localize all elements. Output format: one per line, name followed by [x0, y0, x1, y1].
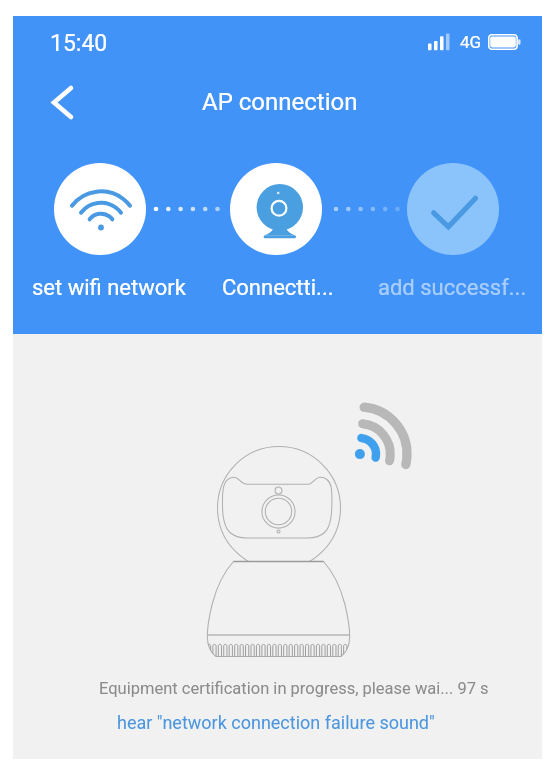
staticText: add successf... [378, 275, 527, 301]
staticText: hear "network connection failure sound" [117, 712, 435, 733]
staticText: set wifi network [32, 275, 186, 301]
staticText: 4G [460, 32, 482, 52]
staticText: Connectti... [222, 275, 334, 301]
button[interactable]: set wifi network [54, 163, 146, 255]
button[interactable]: hear "network connection failure sound" [106, 707, 446, 737]
button[interactable]: Back [38, 80, 82, 124]
staticText: AP connection [202, 88, 358, 116]
staticText: Equipment certification in progress, ple… [99, 679, 489, 698]
button[interactable]: Connecting [230, 163, 322, 255]
button[interactable]: add successful [407, 163, 499, 255]
staticText: 15:40 [50, 30, 108, 57]
